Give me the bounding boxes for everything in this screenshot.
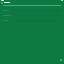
button[interactable] (2, 14, 62, 17)
button[interactable] (2, 19, 62, 22)
button[interactable] (2, 9, 62, 12)
button[interactable]: Add (60, 59, 62, 61)
button[interactable]: Navigate up (1, 2, 3, 4)
